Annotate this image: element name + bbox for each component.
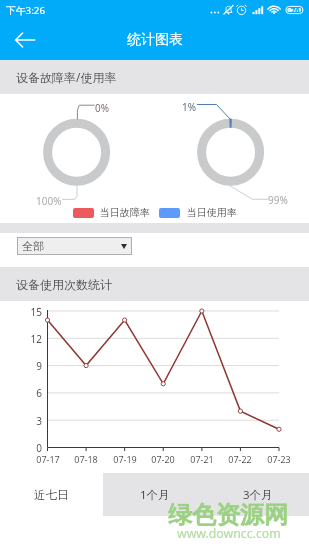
staticText: www.downcc.com: [177, 525, 281, 542]
staticText: 07-19: [108, 453, 142, 465]
staticText: 绿色资源网: [168, 500, 288, 530]
staticText: 07-18: [69, 453, 103, 465]
staticText: 1%: [182, 100, 197, 114]
staticText: 当日故障率: [100, 206, 150, 219]
staticText: 100%: [36, 194, 62, 208]
staticText: 全部: [22, 239, 44, 253]
button[interactable]: 近七日: [0, 473, 103, 516]
staticText: 6: [18, 386, 42, 400]
button[interactable]: Back: [0, 20, 44, 60]
staticText: 近七日: [34, 488, 69, 502]
staticText: 设备使用次数统计: [16, 277, 112, 292]
staticText: 9: [18, 359, 42, 373]
button[interactable]: 3个月: [206, 473, 309, 516]
staticText: 1个月: [140, 487, 170, 503]
button[interactable]: 全部: [17, 237, 132, 255]
staticText: 设备故障率/使用率: [16, 69, 117, 85]
button[interactable]: 1个月: [103, 473, 206, 516]
staticText: 统计图表: [127, 31, 183, 49]
staticText: 3个月: [243, 487, 273, 503]
staticText: 下午3:26: [6, 4, 46, 17]
staticText: 0: [18, 441, 42, 455]
staticText: 07-23: [262, 453, 296, 465]
staticText: 76: [291, 5, 300, 15]
staticText: 07-20: [146, 453, 180, 465]
staticText: 07-17: [31, 453, 65, 465]
staticText: 12: [18, 332, 42, 346]
staticText: 07-21: [185, 453, 219, 465]
staticText: 当日使用率: [187, 206, 237, 219]
staticText: 15: [18, 305, 42, 319]
staticText: 99%: [268, 193, 288, 207]
staticText: 0%: [95, 101, 110, 115]
staticText: 07-22: [223, 453, 257, 465]
staticText: 3: [18, 414, 42, 428]
